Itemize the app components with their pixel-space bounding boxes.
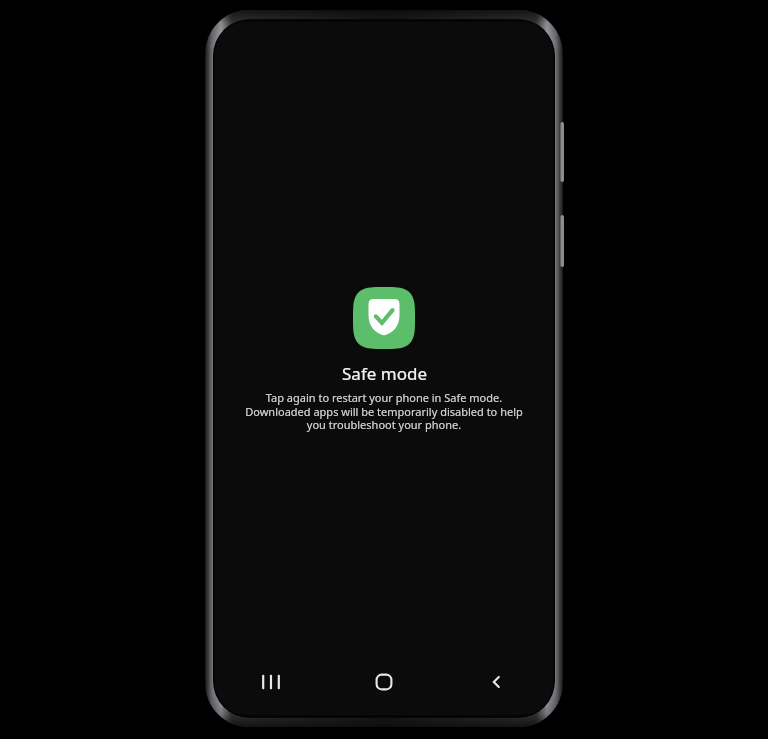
staticText: Safe mode [342,362,427,385]
button[interactable]: Back [440,660,553,704]
button[interactable]: Home [327,660,440,704]
button[interactable]: Safe mode [353,287,415,349]
button[interactable]: Recent apps [215,660,327,704]
staticText: Tap again to restart your phone in Safe … [242,390,526,432]
